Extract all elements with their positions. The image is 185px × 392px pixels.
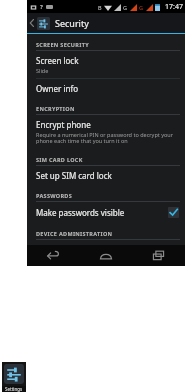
button[interactable]: Make passwords visible: [27, 202, 185, 223]
button[interactable]: Back: [27, 13, 185, 33]
staticText: PASSWORDS: [36, 192, 72, 199]
staticText: Slide: [36, 67, 49, 74]
staticText: G: [123, 4, 128, 11]
staticText: Make passwords visible: [36, 207, 168, 218]
button[interactable]: Screen lock: [27, 51, 185, 78]
button[interactable]: Owner info: [27, 79, 185, 98]
button[interactable]: Recent apps: [132, 245, 185, 266]
staticText: Set up SIM card lock: [36, 170, 112, 181]
staticText: 17:47: [165, 2, 183, 12]
staticText: Require a numerical PIN or password to d…: [36, 131, 179, 145]
staticText: SIM CARD LOCK: [36, 156, 83, 163]
other: Back: [29, 18, 35, 28]
button[interactable]: Encrypt phone: [27, 115, 185, 149]
staticText: DEVICE ADMINISTRATION: [36, 230, 113, 237]
staticText: ?: [40, 3, 43, 11]
staticText: Security: [55, 17, 89, 29]
staticText: Settings: [5, 386, 23, 392]
staticText: Screen lock: [36, 55, 79, 66]
staticText: SCREEN SECURITY: [36, 41, 89, 48]
button[interactable]: Set up SIM card lock: [27, 166, 185, 185]
button[interactable]: Home: [79, 245, 132, 266]
staticText: B: [98, 4, 102, 11]
button[interactable]: Back: [27, 245, 79, 266]
button[interactable]: Settings: [2, 362, 26, 392]
staticText: ENCRYPTION: [36, 105, 75, 112]
staticText: Owner info: [36, 83, 78, 94]
staticText: G: [139, 4, 144, 11]
staticText: Encrypt phone: [36, 119, 91, 130]
